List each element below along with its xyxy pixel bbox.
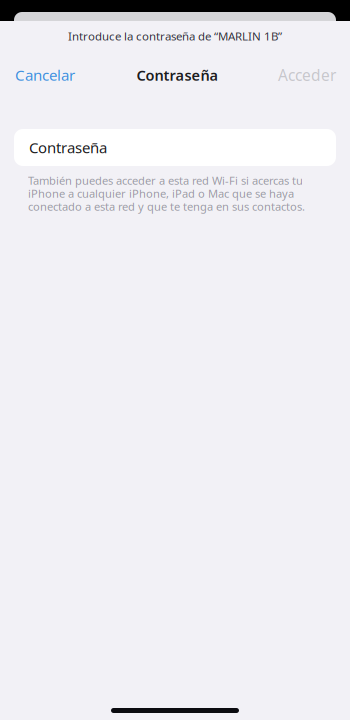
staticText: conectado a esta red y que te tenga en s… [28,199,305,214]
button[interactable]: Cancelar [0,59,83,91]
staticText: También puedes acceder a esta red Wi-Fi … [28,173,303,188]
staticText: Contraseña [29,137,107,158]
staticText: Contraseña [136,65,218,85]
staticText: Introduce la contraseña de “MARLIN 1B” [68,28,282,44]
staticText: iPhone a cualquier iPhone, iPad o Mac qu… [28,186,294,201]
button[interactable]: Contraseña [14,129,336,166]
staticText: Cancelar [15,65,75,85]
staticText: Acceder [278,64,336,86]
button[interactable]: Acceder [270,58,350,92]
